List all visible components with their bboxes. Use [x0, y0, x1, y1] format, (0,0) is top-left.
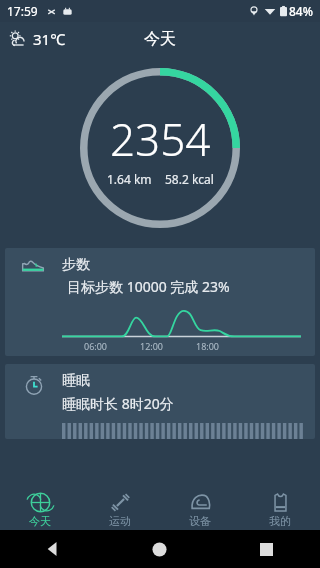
staticText: 今天: [29, 514, 51, 528]
staticText: 睡眠: [62, 372, 90, 390]
button[interactable]: 步数: [5, 248, 315, 356]
button[interactable]: Back: [0, 530, 106, 568]
button[interactable]: 设备: [160, 490, 240, 530]
staticText: 今天: [144, 29, 176, 49]
button[interactable]: 我的: [240, 490, 320, 530]
staticText: 目标步数 10000 完成 23%: [67, 277, 230, 296]
staticText: 58.2 kcal: [165, 171, 214, 187]
button[interactable]: 31℃: [6, 26, 68, 52]
staticText: 31℃: [33, 29, 66, 49]
staticText: 17:59: [7, 3, 38, 19]
staticText: 18:00: [196, 340, 220, 352]
staticText: 2354: [110, 109, 211, 169]
staticText: 1.64 km: [107, 171, 152, 187]
staticText: 84%: [289, 3, 313, 19]
staticText: 设备: [189, 514, 211, 528]
staticText: 运动: [109, 514, 131, 528]
button[interactable]: 今天: [0, 490, 80, 530]
button[interactable]: Home: [106, 530, 213, 568]
staticText: 06:00: [84, 340, 108, 352]
staticText: 睡眠时长 8时20分: [62, 394, 174, 413]
staticText: 步数: [62, 256, 90, 274]
button[interactable]: 睡眠: [5, 364, 315, 439]
staticText: 我的: [269, 514, 291, 528]
button[interactable]: Recents: [213, 530, 320, 568]
button[interactable]: 运动: [80, 490, 160, 530]
staticText: 12:00: [140, 340, 164, 352]
